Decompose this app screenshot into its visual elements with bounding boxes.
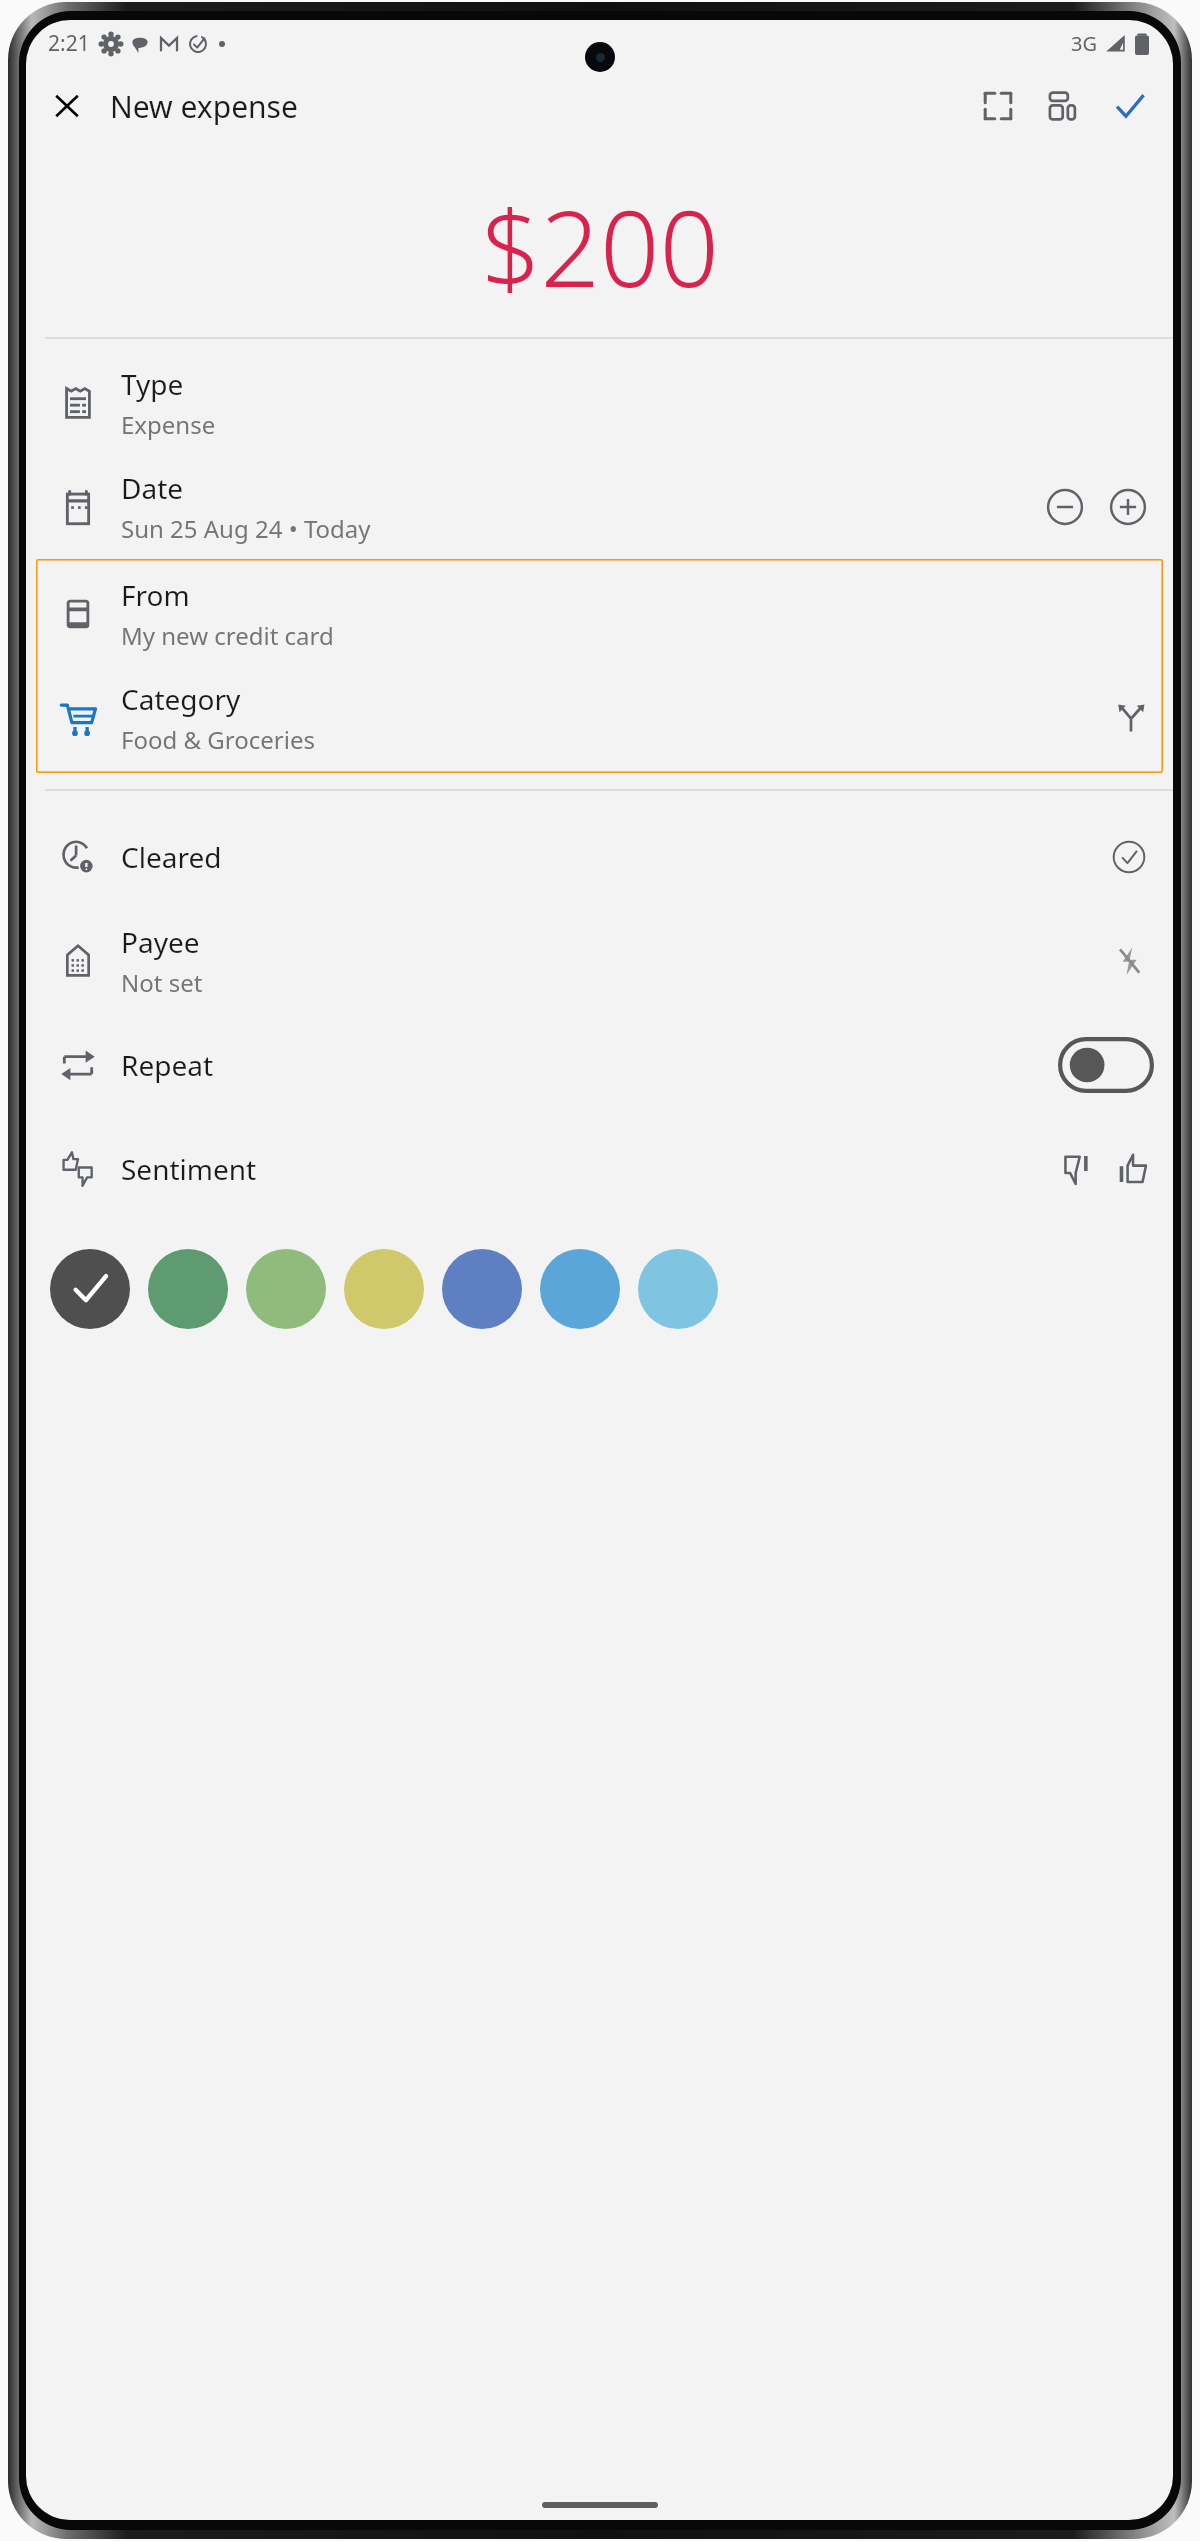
button[interactable]: Colour 2	[148, 1249, 228, 1329]
button[interactable]: Thumb down	[1054, 1146, 1100, 1192]
button[interactable]: Colour 7	[638, 1249, 718, 1329]
button[interactable]: Thumb up	[1108, 1146, 1154, 1192]
button[interactable]: Sentiment	[26, 1117, 1173, 1221]
button[interactable]: Category	[36, 666, 1163, 770]
staticText: Payee	[121, 923, 200, 961]
staticText: Cleared	[121, 838, 222, 876]
staticText: New expense	[110, 86, 298, 127]
staticText: From	[121, 576, 190, 614]
staticText: Type	[121, 365, 184, 403]
staticText: Food & Groceries	[121, 723, 315, 756]
staticText: Date	[121, 469, 184, 507]
button[interactable]: Type	[26, 351, 1173, 455]
button[interactable]: Colour 5	[442, 1249, 522, 1329]
staticText: Not set	[121, 966, 203, 999]
button[interactable]: From	[36, 562, 1163, 666]
button[interactable]: Date	[26, 455, 1173, 559]
staticText: 3G	[1071, 30, 1097, 57]
staticText: 2:21	[48, 29, 90, 58]
button[interactable]: Repeat toggle	[1058, 1037, 1154, 1093]
staticText: Sun 25 Aug 24 • Today	[121, 512, 371, 545]
button[interactable]: Decrease date	[1039, 481, 1091, 533]
staticText: My new credit card	[121, 619, 334, 652]
staticText: Sentiment	[121, 1150, 257, 1188]
button[interactable]: Colour 6	[540, 1249, 620, 1329]
button[interactable]: Payee	[26, 909, 1173, 1013]
staticText: Category	[121, 680, 241, 718]
button[interactable]: Colour 4	[344, 1249, 424, 1329]
button[interactable]: Increase date	[1102, 481, 1154, 533]
button[interactable]: No flash	[1104, 936, 1154, 986]
button[interactable]: Close	[38, 77, 96, 135]
button[interactable]: Repeat	[26, 1013, 1173, 1117]
staticText: Expense	[121, 408, 216, 441]
button[interactable]: Split category	[1108, 695, 1154, 741]
button[interactable]: Colour 1	[50, 1249, 130, 1329]
staticText: Repeat	[121, 1046, 214, 1084]
button[interactable]: Cleared	[1104, 832, 1154, 882]
staticText: $200	[481, 176, 719, 318]
button[interactable]: Scan receipt	[969, 77, 1027, 135]
button[interactable]: Cleared	[26, 805, 1173, 909]
button[interactable]: Save	[1101, 77, 1159, 135]
button[interactable]: Layout	[1035, 77, 1093, 135]
button[interactable]: Colour 3	[246, 1249, 326, 1329]
